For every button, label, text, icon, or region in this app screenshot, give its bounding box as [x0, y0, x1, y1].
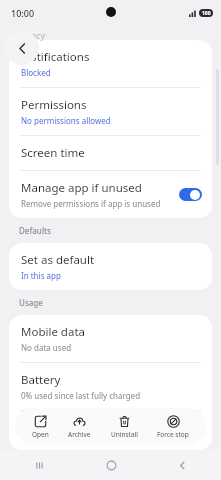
button[interactable]: Permissions — [9, 88, 212, 135]
button[interactable]: Back — [5, 31, 39, 65]
staticText: Manage app if unused — [21, 180, 142, 196]
staticText: Permissions — [21, 97, 87, 113]
button[interactable]: Force stop — [154, 412, 192, 442]
button[interactable]: Back — [171, 454, 193, 476]
button[interactable]: Battery — [9, 363, 212, 410]
staticText: Notifications — [21, 49, 90, 65]
staticText: In this app — [21, 270, 61, 281]
staticText: Set as default — [21, 252, 95, 268]
staticText: Screen time — [21, 145, 85, 161]
staticText: Blocked — [21, 67, 51, 78]
button[interactable]: Open — [29, 412, 52, 442]
staticText: No data used — [21, 342, 72, 353]
staticText: Archive — [68, 430, 91, 439]
button[interactable]: Screen time — [9, 136, 212, 170]
staticText: 83.79 MB used in Internal storage — [21, 438, 148, 441]
button[interactable]: Notifications — [9, 40, 212, 87]
staticText: Open — [32, 430, 49, 439]
staticText: Uninstall — [111, 430, 138, 439]
staticText: 100 — [202, 10, 211, 17]
staticText: Defaults — [19, 225, 51, 236]
staticText: Remove permissions if app is unused — [21, 198, 161, 209]
button[interactable]: Uninstall — [108, 412, 141, 442]
button[interactable]: Recents — [28, 454, 50, 476]
staticText: 10:00 — [11, 7, 35, 19]
button[interactable]: Set as default — [9, 243, 212, 290]
staticText: Mobile data — [21, 324, 85, 340]
staticText: 0% used since last fully charged — [21, 390, 141, 401]
button[interactable]: Storage — [9, 411, 212, 450]
staticText: No permissions allowed — [21, 115, 111, 126]
button[interactable]: Home — [100, 454, 122, 476]
staticText: Battery — [21, 372, 61, 388]
button[interactable]: Archive — [65, 412, 94, 442]
staticText: Privacy — [15, 29, 46, 41]
staticText: Force stop — [157, 430, 189, 439]
staticText: Storage — [21, 420, 63, 436]
staticText: Usage — [19, 297, 43, 308]
button[interactable]: Mobile data — [9, 315, 212, 362]
button[interactable]: Manage app if unused — [9, 171, 212, 218]
